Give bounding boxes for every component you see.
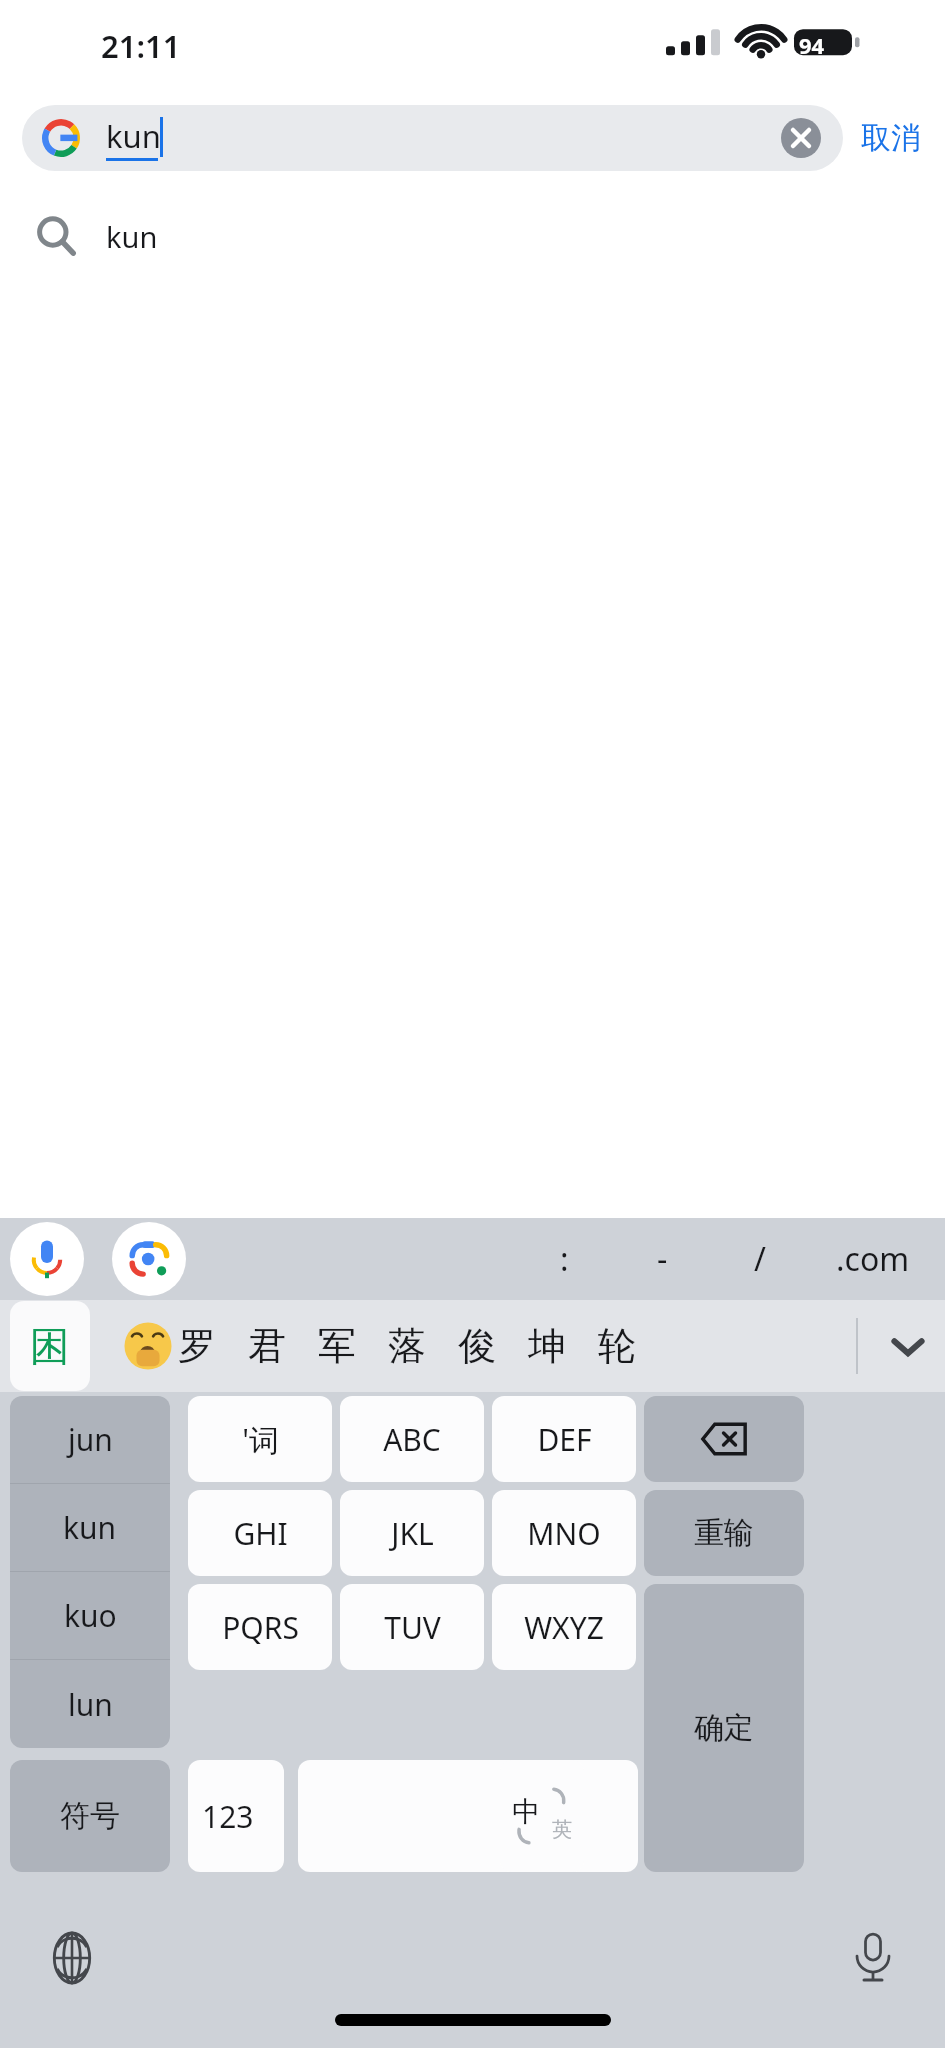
button[interactable]: 落 [372, 1301, 442, 1391]
button[interactable]: 123 [188, 1760, 284, 1872]
button[interactable]: TUV [340, 1584, 484, 1670]
button[interactable]: 取消 [843, 109, 939, 167]
button[interactable]: 确定 [644, 1584, 804, 1872]
button[interactable]: Switch keyboard [36, 1922, 108, 1994]
staticText: 军 [318, 1322, 356, 1370]
staticText: 确定 [694, 1709, 754, 1747]
staticText: kun [106, 217, 158, 256]
button[interactable]: Space [298, 1760, 638, 1872]
button[interactable]: kun [0, 188, 945, 284]
staticText: 罗 [178, 1322, 216, 1370]
staticText: DEF [537, 1419, 592, 1460]
staticText: '词 [242, 1419, 279, 1460]
button[interactable]: 轮 [582, 1301, 652, 1391]
button[interactable]: 符号 [10, 1760, 170, 1872]
button[interactable]: lun [10, 1660, 170, 1748]
staticText: JKL [391, 1513, 434, 1554]
staticText: 坤 [528, 1322, 566, 1370]
button[interactable]: 困 [10, 1301, 90, 1391]
button[interactable]: Google Lens [112, 1222, 186, 1296]
button[interactable]: Dictation [837, 1922, 909, 1994]
staticText: kun [63, 1507, 117, 1548]
staticText: 俊 [458, 1322, 496, 1370]
staticText: lun [68, 1684, 113, 1725]
staticText: kun [106, 115, 161, 157]
button[interactable]: Chinese English toggle [500, 1760, 584, 1872]
button[interactable]: : [515, 1219, 613, 1299]
button[interactable]: kuo [10, 1572, 170, 1659]
staticText: .com [836, 1237, 910, 1281]
staticText: TUV [384, 1607, 441, 1648]
button[interactable]: PQRS [188, 1584, 332, 1670]
button[interactable]: JKL [340, 1490, 484, 1576]
staticText: 21:11 [101, 25, 181, 67]
staticText: GHI [233, 1513, 288, 1554]
staticText: 符号 [60, 1797, 120, 1835]
button[interactable]: WXYZ [492, 1584, 636, 1670]
staticText: 困 [30, 1321, 70, 1371]
button[interactable]: ABC [340, 1396, 484, 1482]
button[interactable]: 军 [302, 1301, 372, 1391]
staticText: jun [68, 1419, 113, 1460]
button[interactable]: kun [22, 105, 843, 171]
staticText: : [560, 1237, 569, 1281]
staticText: ABC [383, 1419, 441, 1460]
button[interactable]: 罗 [162, 1301, 232, 1391]
button[interactable]: '词 [188, 1396, 332, 1482]
button[interactable]: 君 [232, 1301, 302, 1391]
button[interactable]: - [613, 1219, 711, 1299]
staticText: / [754, 1237, 766, 1281]
staticText: 君 [248, 1322, 286, 1370]
staticText: 94 [799, 30, 825, 60]
button[interactable]: 俊 [442, 1301, 512, 1391]
button[interactable]: Backspace [644, 1396, 804, 1482]
staticText: kuo [64, 1595, 117, 1636]
staticText: 落 [388, 1322, 426, 1370]
staticText: MNO [527, 1513, 601, 1554]
button[interactable]: 重输 [644, 1490, 804, 1576]
button[interactable]: 坤 [512, 1301, 582, 1391]
staticText: 中 [512, 1794, 540, 1829]
staticText: WXYZ [524, 1607, 604, 1648]
button[interactable] [108, 1306, 188, 1386]
button[interactable]: kun [10, 1484, 170, 1571]
button[interactable]: GHI [188, 1490, 332, 1576]
staticText: 轮 [598, 1322, 636, 1370]
staticText: 取消 [861, 119, 921, 157]
staticText: - [657, 1237, 668, 1281]
staticText: 英 [552, 1817, 572, 1842]
button[interactable]: MNO [492, 1490, 636, 1576]
button[interactable]: / [711, 1219, 809, 1299]
staticText: 重输 [694, 1514, 754, 1552]
button[interactable]: jun [10, 1396, 170, 1483]
button[interactable]: DEF [492, 1396, 636, 1482]
button[interactable]: Expand candidates [871, 1309, 945, 1383]
button[interactable]: Voice search [10, 1222, 84, 1296]
staticText: 123 [202, 1796, 254, 1837]
staticText: PQRS [222, 1607, 299, 1648]
button[interactable]: .com [809, 1219, 937, 1299]
button[interactable]: Clear [779, 116, 823, 160]
